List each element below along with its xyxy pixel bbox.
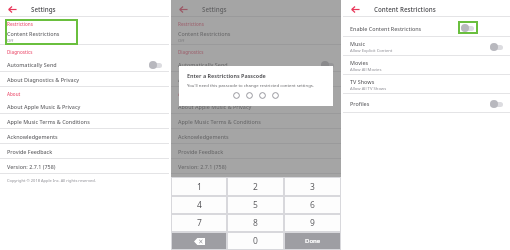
button[interactable]: Done xyxy=(285,233,340,249)
button[interactable]: Acknowledgements xyxy=(0,129,169,144)
button[interactable]: 3 xyxy=(285,178,340,195)
button[interactable]: About Diagnostics & Privacy xyxy=(0,72,169,87)
other: Back xyxy=(179,5,188,14)
staticText: Version: 2.7.1 (758) xyxy=(178,163,227,170)
staticText: Settings xyxy=(202,5,227,13)
staticText: Restrictions xyxy=(7,21,33,27)
staticText: Apple Music Terms & Conditions xyxy=(7,118,90,125)
staticText: About Apple Music & Privacy xyxy=(178,103,252,110)
staticText: TV Shows xyxy=(350,78,375,85)
staticText: 8 xyxy=(253,217,258,229)
button[interactable]: Enable Content Restrictions xyxy=(343,20,510,37)
staticText: About Diagnostics & Privacy xyxy=(7,76,80,83)
button[interactable]: 8 xyxy=(228,215,283,231)
button[interactable]: Back xyxy=(177,3,189,15)
button[interactable]: Version: 2.7.1 (758) xyxy=(0,159,169,174)
staticText: Movies xyxy=(350,59,369,66)
button[interactable]: Toggle xyxy=(461,24,474,32)
button[interactable]: 4 xyxy=(172,197,226,213)
staticText: Allow Explicit Content xyxy=(350,48,393,54)
button[interactable]: Toggle xyxy=(149,61,162,69)
staticText: 7 xyxy=(197,217,202,229)
button[interactable]: About Diagnostics & Privacy xyxy=(171,72,341,87)
staticText: Off xyxy=(178,38,185,44)
staticText: Apple Music Terms & Conditions xyxy=(178,118,261,125)
staticText: About Apple Music & Privacy xyxy=(7,103,81,110)
staticText: Content Restrictions xyxy=(178,30,231,37)
staticText: About xyxy=(7,91,21,97)
staticText: Acknowledgements xyxy=(7,133,58,140)
other: Back xyxy=(351,5,360,14)
staticText: About xyxy=(178,91,192,97)
staticText: Profiles xyxy=(350,100,370,107)
button[interactable]: 2 xyxy=(228,178,283,195)
staticText: Copyright © 2018 Apple Inc. All rights r… xyxy=(7,178,96,183)
staticText: Diagnostics xyxy=(7,49,33,55)
button[interactable]: Provide Feedback xyxy=(171,144,341,159)
button[interactable]: Version: 2.7.1 (758) xyxy=(171,159,341,174)
button[interactable]: Music xyxy=(343,37,510,56)
staticText: 0 xyxy=(253,235,258,247)
staticText: Version: 2.7.1 (758) xyxy=(7,163,56,170)
button[interactable]: Acknowledgements xyxy=(171,129,341,144)
button[interactable]: Movies xyxy=(343,56,510,75)
staticText: Acknowledgements xyxy=(178,133,229,140)
staticText: 1 xyxy=(197,181,202,193)
staticText: Provide Feedback xyxy=(7,148,53,155)
button[interactable]: Toggle xyxy=(321,61,334,69)
staticText: Automatically Send xyxy=(178,61,228,68)
other: Back xyxy=(8,5,17,14)
button[interactable]: Content Restrictions xyxy=(171,29,341,45)
staticText: Content Restrictions xyxy=(7,30,60,37)
staticText: Automatically Send xyxy=(7,61,57,68)
button[interactable]: Content Restrictions xyxy=(0,29,169,45)
button[interactable]: Back xyxy=(349,3,361,15)
button[interactable]: Back xyxy=(6,3,18,15)
staticText: Diagnostics xyxy=(178,49,204,55)
staticText: Enable Content Restrictions xyxy=(350,25,422,32)
staticText: About Diagnostics & Privacy xyxy=(178,76,251,83)
button[interactable]: Apple Music Terms & Conditions xyxy=(171,114,341,129)
button[interactable]: Provide Feedback xyxy=(0,144,169,159)
button[interactable]: 7 xyxy=(172,215,226,231)
staticText: Provide Feedback xyxy=(178,148,224,155)
button[interactable]: Apple Music Terms & Conditions xyxy=(0,114,169,129)
staticText: You'll need this passcode to change rest… xyxy=(187,82,314,88)
staticText: Restrictions xyxy=(178,21,204,27)
button[interactable]: 0 xyxy=(228,233,283,249)
staticText: 3 xyxy=(310,181,315,193)
staticText: Allow All TV Shows xyxy=(350,86,387,92)
button[interactable]: Toggle xyxy=(490,100,503,108)
staticText: 4 xyxy=(197,199,202,211)
staticText: 2 xyxy=(253,181,258,193)
button[interactable]: About Apple Music & Privacy xyxy=(0,99,169,114)
button[interactable]: Automatically Send xyxy=(0,57,169,72)
staticText: Done xyxy=(305,237,321,245)
button[interactable]: Automatically Send xyxy=(171,57,341,72)
staticText: Content Restrictions xyxy=(374,5,436,13)
button[interactable]: Toggle xyxy=(490,43,503,51)
staticText: Settings xyxy=(31,5,56,13)
button[interactable]: 6 xyxy=(285,197,340,213)
button[interactable]: About Apple Music & Privacy xyxy=(171,99,341,114)
staticText: Music xyxy=(350,40,366,47)
staticText: Off xyxy=(7,38,14,44)
button[interactable]: 5 xyxy=(228,197,283,213)
button[interactable]: 9 xyxy=(285,215,340,231)
staticText: 5 xyxy=(253,199,258,211)
button[interactable]: Profiles xyxy=(343,94,510,113)
staticText: 6 xyxy=(310,199,315,211)
button[interactable]: Delete xyxy=(172,233,226,249)
button[interactable]: 1 xyxy=(172,178,226,195)
staticText: Enter a Restrictions Passcode xyxy=(187,72,266,79)
button[interactable]: TV Shows xyxy=(343,75,510,94)
staticText: Allow All Movies xyxy=(350,67,382,73)
staticText: 9 xyxy=(310,217,315,229)
